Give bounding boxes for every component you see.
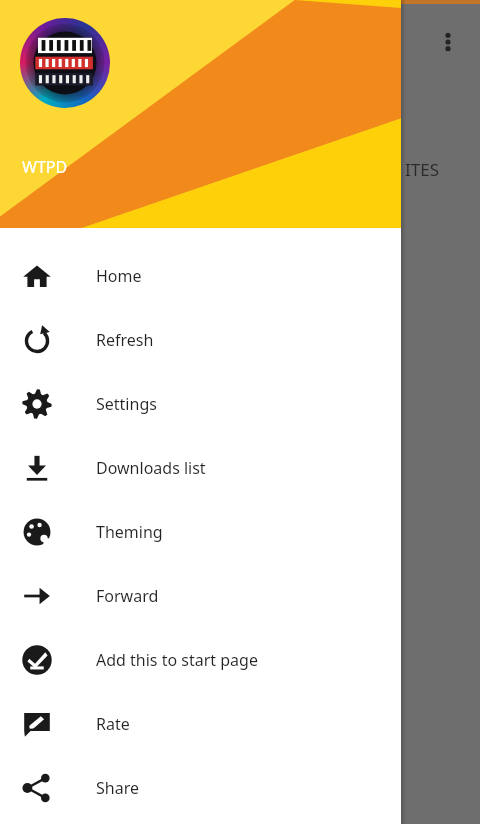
button[interactable]: Share <box>0 756 401 820</box>
staticText: Downloads list <box>96 457 206 479</box>
staticText: WTPD <box>22 156 68 178</box>
staticText: Home <box>96 265 142 287</box>
button[interactable]: Theming <box>0 500 401 564</box>
button[interactable]: Downloads list <box>0 436 401 500</box>
button[interactable]: Forward <box>0 564 401 628</box>
button[interactable]: Home <box>0 244 401 308</box>
staticText: Settings <box>96 393 157 415</box>
button[interactable]: Refresh <box>0 308 401 372</box>
button[interactable]: Settings <box>0 372 401 436</box>
button[interactable]: Add this to start page <box>0 628 401 692</box>
staticText: Refresh <box>96 329 154 351</box>
staticText: Forward <box>96 585 159 607</box>
staticText: Theming <box>96 521 163 543</box>
button[interactable]: More options <box>428 22 468 62</box>
button[interactable]: Rate <box>0 692 401 756</box>
staticText: Rate <box>96 713 130 735</box>
staticText: Add this to start page <box>96 649 258 671</box>
staticText: Share <box>96 777 139 799</box>
staticText: ITES <box>405 158 439 181</box>
